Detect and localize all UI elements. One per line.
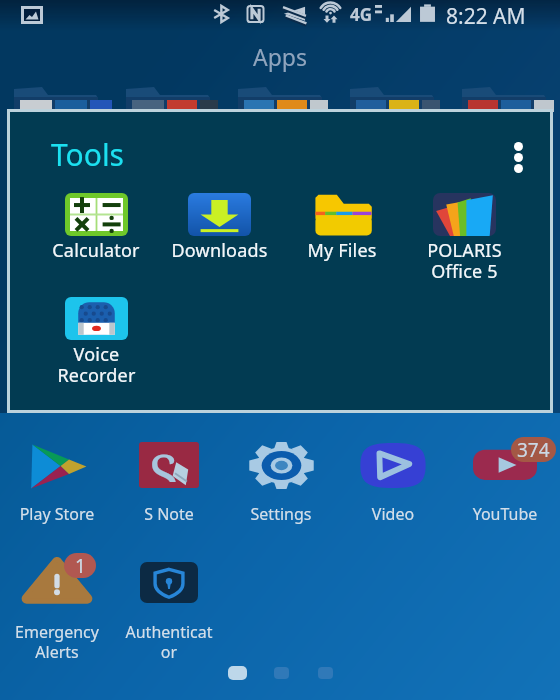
staticText: 8:22 AM [446, 2, 526, 31]
button[interactable]: Play Store [1, 443, 113, 547]
button[interactable]: Emergency Alerts [1, 557, 113, 665]
button[interactable]: More options [496, 130, 540, 184]
button[interactable]: Authenticat or [113, 562, 225, 665]
button[interactable]: Settings [225, 441, 337, 547]
staticText: S [149, 436, 179, 482]
staticText: Play Store [1, 503, 113, 525]
staticText: 1 [75, 553, 86, 578]
staticText: Emergency Alerts [1, 621, 113, 662]
staticText: POLARIS Office 5 [427, 238, 502, 284]
staticText: 4G [350, 3, 373, 26]
button[interactable]: My Files [283, 193, 401, 263]
staticText: S Note [113, 503, 225, 525]
button[interactable]: Calculator [37, 193, 155, 263]
staticText: YouTube [449, 503, 560, 525]
staticText: Video [337, 503, 449, 525]
staticText: Tools [51, 134, 124, 175]
staticText: 374 [517, 437, 550, 462]
button[interactable]: S [113, 442, 225, 547]
staticText: Settings [225, 503, 337, 525]
staticText: Authenticat or [113, 621, 225, 662]
staticText: Apps [253, 41, 308, 72]
button[interactable]: Video [337, 442, 449, 547]
staticText: Calculator [52, 238, 140, 263]
button[interactable]: YouTube [449, 441, 560, 547]
staticText: Downloads [171, 238, 268, 263]
staticText: Voice Recorder [57, 342, 136, 388]
staticText: My Files [307, 238, 377, 263]
button[interactable]: POLARIS Office 5 [405, 193, 523, 284]
button[interactable]: Voice Recorder [37, 297, 155, 388]
button[interactable]: Downloads [160, 193, 278, 263]
